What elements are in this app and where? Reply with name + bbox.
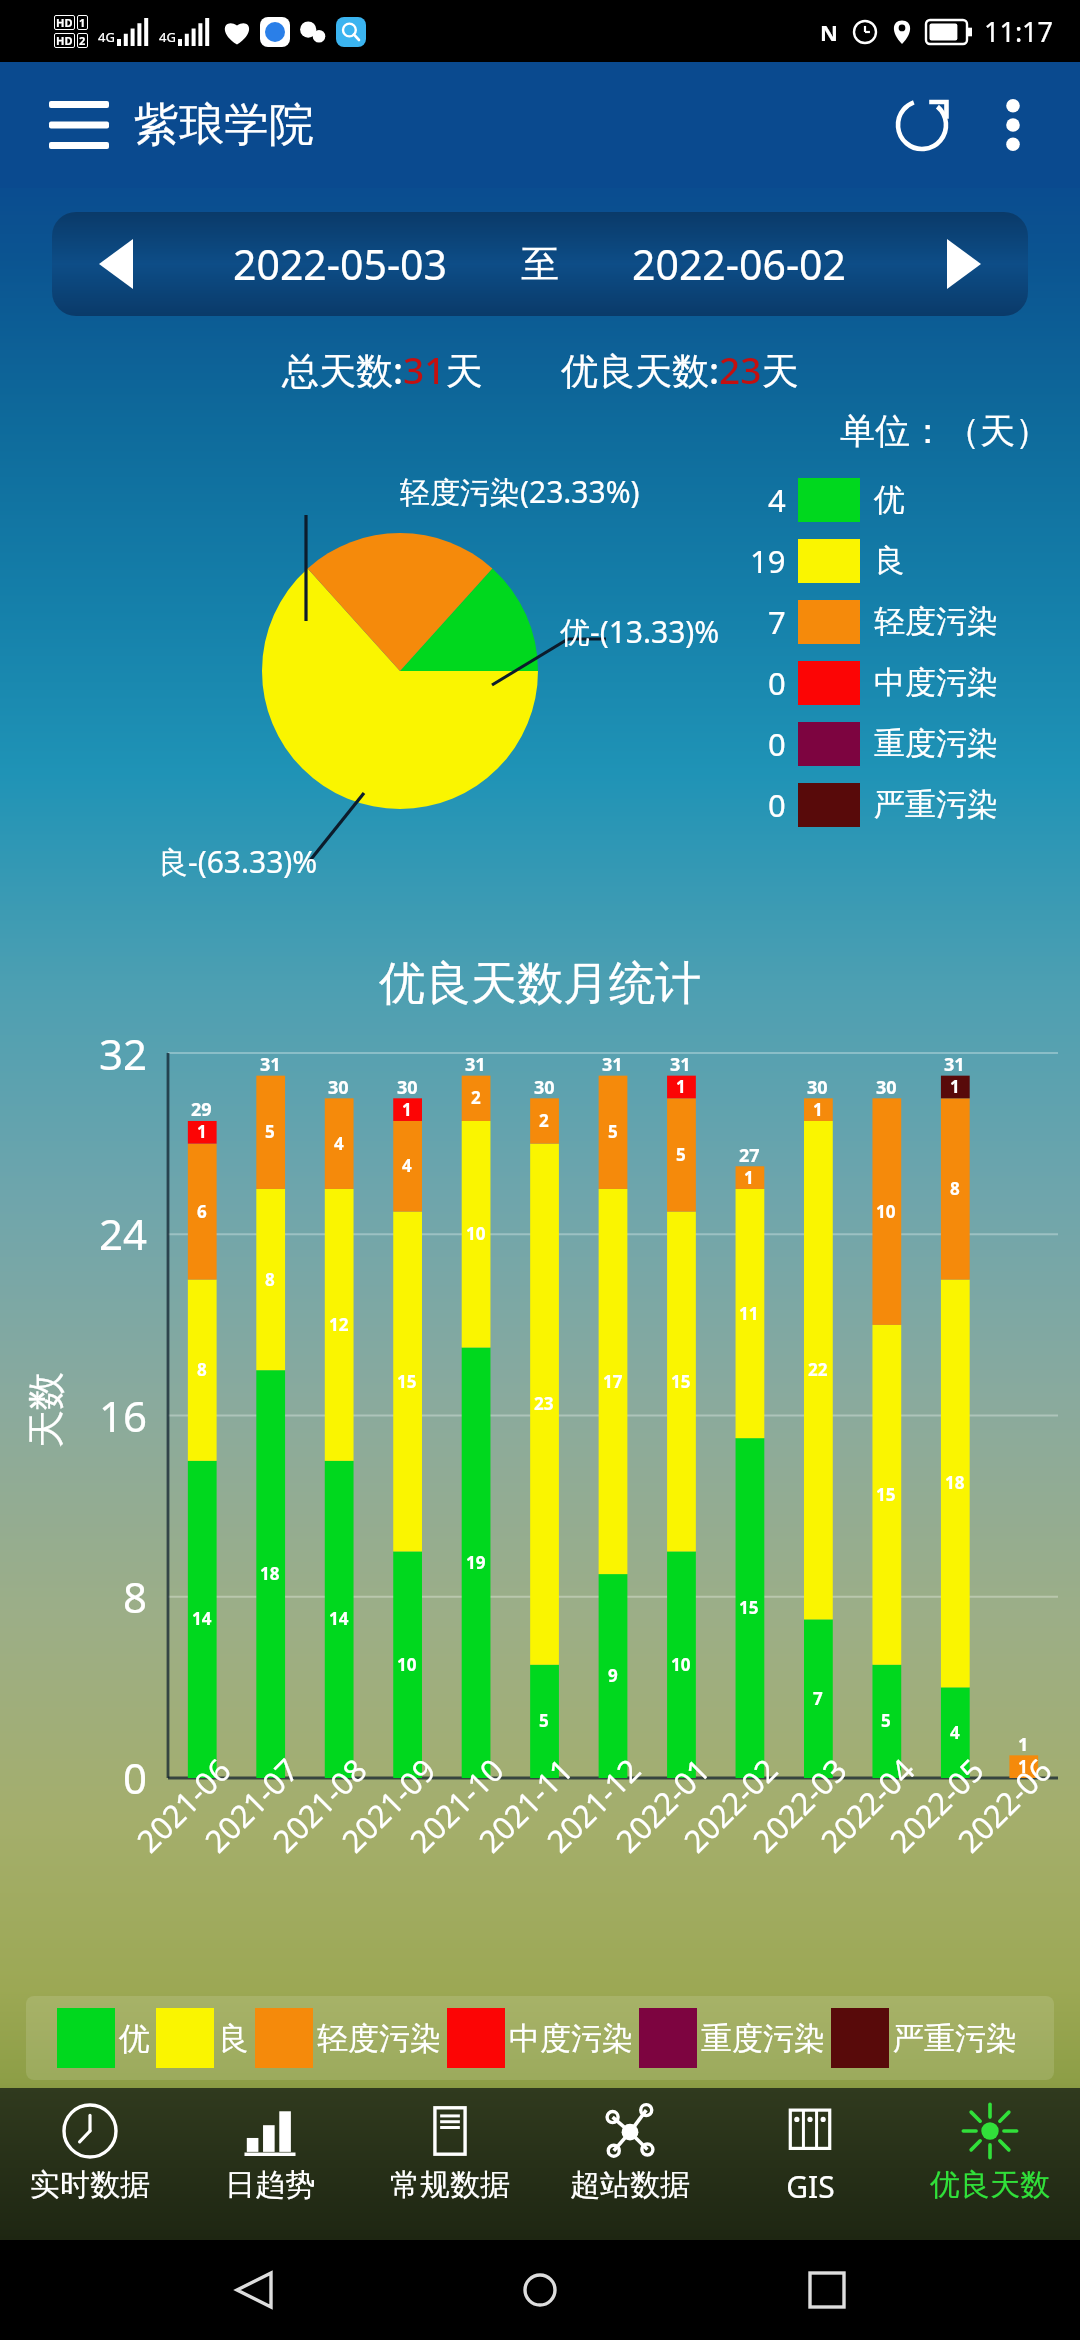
staticText: 轻度污染 xyxy=(874,602,998,641)
staticText: 1 xyxy=(197,1120,207,1143)
staticText: 11:17 xyxy=(984,13,1054,50)
staticText: 5 xyxy=(265,1120,275,1143)
staticText: 2021-08 xyxy=(263,1749,376,1861)
staticText: 单位：（天） xyxy=(840,409,1050,453)
staticText: 23 xyxy=(534,1392,554,1415)
staticText: 18 xyxy=(260,1562,280,1585)
staticText: N xyxy=(820,17,838,47)
staticText: HD xyxy=(56,15,73,30)
staticText: 优 xyxy=(874,480,905,519)
staticText: 良 xyxy=(218,2019,249,2058)
staticText: 日趋势 xyxy=(225,2166,315,2204)
button[interactable]: More options xyxy=(970,82,1056,168)
staticText: 31 xyxy=(602,1052,623,1077)
staticText: 8 xyxy=(265,1268,275,1291)
staticText: 15 xyxy=(739,1596,759,1619)
button[interactable]: 4 xyxy=(728,469,1050,530)
button[interactable]: 日趋势 xyxy=(180,2088,360,2240)
staticText: 良 xyxy=(874,541,905,580)
staticText: 天数 xyxy=(22,1372,70,1448)
staticText: 2022-06 xyxy=(948,1749,1061,1861)
staticText: 2021-06 xyxy=(127,1749,240,1861)
staticText: 2021-10 xyxy=(400,1749,513,1861)
staticText: 31 xyxy=(465,1052,486,1077)
staticText: 30 xyxy=(807,1075,828,1100)
staticText: GIS xyxy=(786,2166,835,2207)
staticText: 2 xyxy=(539,1109,549,1132)
staticText: 10 xyxy=(466,1222,486,1245)
staticText: 优良天数:23天 xyxy=(561,344,799,395)
staticText: 14 xyxy=(329,1607,349,1630)
staticText: 7 xyxy=(813,1687,823,1710)
staticText: 超站数据 xyxy=(570,2166,690,2204)
button[interactable]: 常规数据 xyxy=(360,2088,540,2240)
staticText: 2022-06-02 xyxy=(632,236,847,292)
staticText: 7 xyxy=(768,601,786,643)
button[interactable]: Home xyxy=(507,2257,573,2323)
button[interactable]: 实时数据 xyxy=(0,2088,180,2240)
staticText: 良-(63.33)% xyxy=(158,841,318,882)
staticText: 总天数:31天 xyxy=(282,344,483,395)
staticText: 0 xyxy=(123,1749,148,1806)
staticText: 2021-09 xyxy=(332,1749,445,1861)
staticText: 14 xyxy=(192,1607,212,1630)
staticText: 16 xyxy=(99,1387,148,1444)
staticText: 1 xyxy=(402,1098,412,1121)
staticText: 紫琅学院 xyxy=(134,97,314,154)
button[interactable]: 19 xyxy=(728,530,1050,591)
staticText: 严重污染 xyxy=(893,2019,1017,2058)
button[interactable]: 0 xyxy=(728,774,1050,835)
staticText: 严重污染 xyxy=(874,785,998,824)
button[interactable]: 0 xyxy=(728,713,1050,774)
button[interactable]: 超站数据 xyxy=(540,2088,720,2240)
button[interactable]: Previous period xyxy=(84,232,148,296)
staticText: 15 xyxy=(876,1483,896,1506)
staticText: 31 xyxy=(260,1052,281,1077)
staticText: 中度污染 xyxy=(509,2019,633,2058)
staticText: 11 xyxy=(739,1302,759,1325)
staticText: 2 xyxy=(79,33,86,48)
button[interactable]: Back xyxy=(221,2257,287,2323)
staticText: 18 xyxy=(945,1471,965,1494)
staticText: 5 xyxy=(676,1143,686,1166)
staticText: 32 xyxy=(99,1025,148,1082)
staticText: 4 xyxy=(402,1154,412,1177)
staticText: 5 xyxy=(881,1709,891,1732)
staticText: 10 xyxy=(876,1200,896,1223)
staticText: 2022-05 xyxy=(880,1749,993,1861)
staticText: 重度污染 xyxy=(701,2019,825,2058)
staticText: 15 xyxy=(397,1370,417,1393)
staticText: 9 xyxy=(608,1664,618,1687)
staticText: 2022-02 xyxy=(674,1749,787,1861)
staticText: 31 xyxy=(944,1052,965,1077)
button[interactable]: Recent apps xyxy=(794,2257,860,2323)
staticText: 5 xyxy=(608,1120,618,1143)
staticText: 0 xyxy=(768,723,786,765)
staticText: HD xyxy=(56,33,73,48)
staticText: 1 xyxy=(676,1075,686,1098)
staticText: 轻度污染 xyxy=(317,2019,441,2058)
button[interactable]: 优良天数 xyxy=(900,2088,1080,2240)
button[interactable]: 0 xyxy=(728,652,1050,713)
staticText: 2022-05-03 xyxy=(233,236,448,292)
staticText: 12 xyxy=(329,1313,349,1336)
button[interactable]: GIS xyxy=(720,2088,900,2240)
staticText: 4 xyxy=(334,1132,344,1155)
staticText: 2021-11 xyxy=(469,1749,582,1861)
staticText: 31 xyxy=(670,1052,691,1077)
staticText: 至 xyxy=(521,240,559,288)
staticText: 1 xyxy=(813,1098,823,1121)
staticText: 实时数据 xyxy=(30,2166,150,2204)
staticText: 19 xyxy=(750,540,786,582)
button[interactable]: Next period xyxy=(932,232,996,296)
staticText: 17 xyxy=(603,1370,623,1393)
button[interactable]: 7 xyxy=(728,591,1050,652)
staticText: 24 xyxy=(99,1205,148,1262)
button[interactable]: Refresh xyxy=(874,77,970,173)
staticText: 2022-03 xyxy=(743,1749,856,1861)
staticText: 4 xyxy=(768,479,786,521)
staticText: 1 xyxy=(1018,1732,1029,1757)
staticText: 中度污染 xyxy=(874,663,998,702)
button[interactable]: Menu xyxy=(46,92,112,158)
staticText: 5 xyxy=(539,1709,549,1732)
